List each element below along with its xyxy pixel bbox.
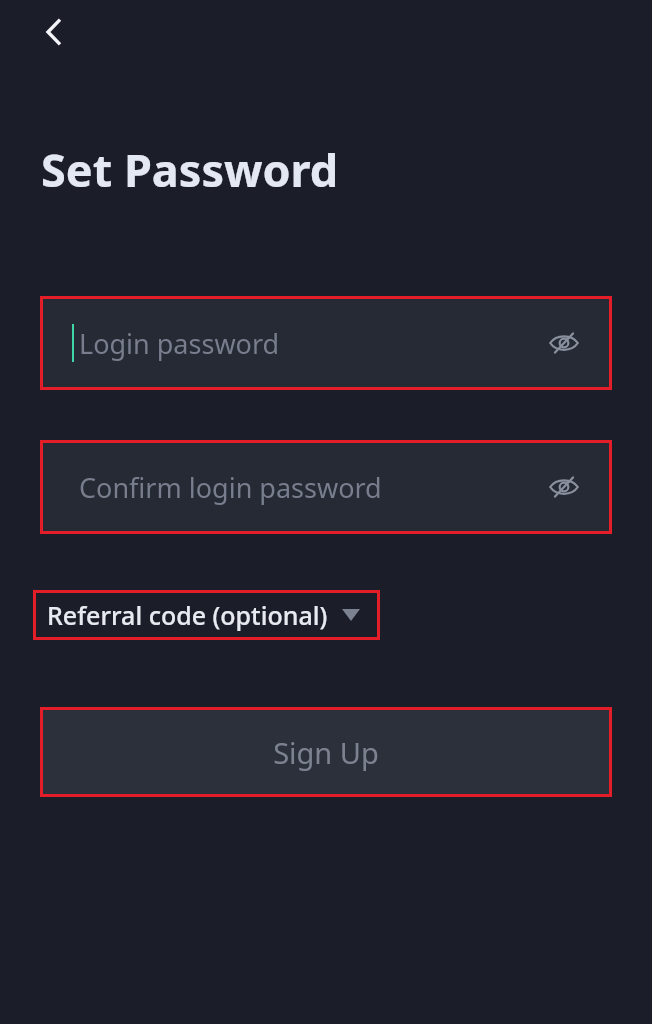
button[interactable]: Sign Up	[43, 710, 609, 794]
staticText: Confirm login password	[79, 469, 382, 506]
button[interactable]: Show password	[541, 320, 587, 366]
button[interactable]: Show password	[541, 464, 587, 510]
staticText: Login password	[79, 325, 280, 362]
button[interactable]: Login password	[43, 299, 609, 387]
button[interactable]: Referral code (optional)	[36, 593, 377, 637]
staticText: Referral code (optional)	[47, 598, 328, 632]
button[interactable]: Confirm login password	[43, 443, 609, 531]
button[interactable]: Back	[32, 10, 76, 54]
staticText: Set Password	[41, 139, 339, 200]
staticText: Sign Up	[273, 733, 379, 772]
